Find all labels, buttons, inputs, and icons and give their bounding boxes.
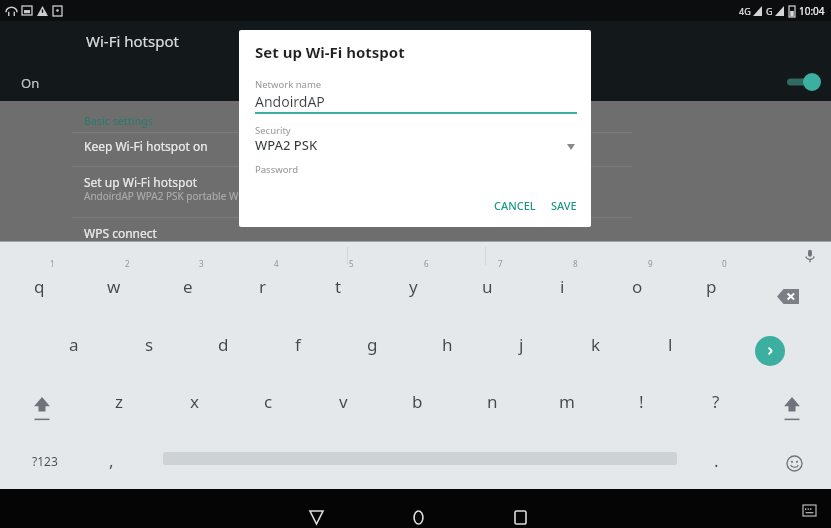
staticText: 4 [274, 258, 279, 269]
staticText: r [259, 275, 267, 298]
button[interactable]: d [199, 327, 247, 361]
button[interactable]: n [468, 384, 516, 418]
staticText: q [34, 275, 45, 298]
staticText: h [442, 333, 453, 356]
staticText: WPA2 PSK [255, 136, 318, 154]
staticText: s [145, 333, 154, 356]
staticText: 1 [50, 258, 55, 269]
staticText: l [668, 333, 673, 356]
staticText: ? [712, 390, 720, 413]
button[interactable]: f [274, 327, 322, 361]
button[interactable]: Home [398, 498, 438, 528]
button[interactable]: l [646, 327, 694, 361]
button[interactable]: Emoji [778, 447, 810, 479]
staticText: e [183, 275, 193, 298]
button[interactable]: k [572, 327, 620, 361]
button[interactable]: Shift [770, 391, 814, 429]
button[interactable]: CANCEL [486, 193, 544, 218]
staticText: On [21, 74, 40, 92]
staticText: Wi-Fi hotspot [86, 31, 179, 51]
button[interactable]: m [543, 384, 591, 418]
staticText: w [107, 275, 121, 298]
staticText: f [295, 333, 301, 356]
staticText: G [766, 5, 773, 17]
staticText: 6 [424, 258, 429, 269]
staticText: g [367, 333, 378, 356]
staticText: . [714, 449, 719, 472]
button[interactable]: h [423, 327, 471, 361]
button[interactable]: Next [755, 336, 785, 366]
staticText: d [218, 333, 229, 356]
button[interactable]: Backspace [766, 279, 810, 313]
button[interactable]: 2 [88, 258, 140, 304]
staticText: i [560, 275, 565, 298]
button[interactable]: Recents [500, 498, 540, 528]
button[interactable]: v [319, 384, 367, 418]
staticText: x [190, 390, 199, 413]
button[interactable]: Hide keyboard [800, 501, 818, 519]
staticText: , [109, 449, 114, 472]
staticText: y [409, 275, 418, 298]
button[interactable]: x [170, 384, 218, 418]
button[interactable]: 6 [387, 258, 439, 304]
staticText: 2 [125, 258, 130, 269]
button[interactable]: Set up Wi-Fi hotspot [84, 174, 198, 190]
button[interactable]: 7 [461, 258, 513, 304]
staticText: j [519, 333, 524, 356]
staticText: 8 [573, 258, 578, 269]
button[interactable]: , [87, 443, 135, 477]
button[interactable]: . [692, 443, 740, 477]
button[interactable]: z [95, 384, 143, 418]
staticText: 7 [498, 258, 503, 269]
staticText: Set up Wi-Fi hotspot [255, 42, 405, 62]
staticText: c [264, 390, 273, 413]
button[interactable]: b [393, 384, 441, 418]
button[interactable]: a [50, 327, 98, 361]
staticText: Security [255, 124, 291, 137]
button[interactable]: 9 [611, 258, 663, 304]
button[interactable]: WPS connect [84, 225, 157, 241]
staticText: ! [639, 390, 644, 413]
button[interactable]: 1 [13, 258, 65, 304]
staticText: b [412, 390, 423, 413]
staticText: p [706, 275, 717, 298]
button[interactable]: j [497, 327, 545, 361]
button[interactable]: ?123 [18, 447, 72, 475]
button[interactable]: 3 [162, 258, 214, 304]
staticText: Basic settings [84, 114, 153, 128]
button[interactable]: AndoirdAP [255, 92, 325, 111]
staticText: n [487, 390, 498, 413]
staticText: 0 [722, 258, 727, 269]
button[interactable]: Keep Wi-Fi hotspot on [84, 138, 208, 154]
staticText: 10:04 [799, 4, 825, 18]
staticText: Network name [255, 78, 322, 91]
staticText: o [632, 275, 643, 298]
button[interactable]: g [348, 327, 396, 361]
button[interactable]: Back [296, 498, 336, 528]
staticText: ?123 [32, 453, 58, 469]
button[interactable]: Password [255, 163, 298, 176]
button[interactable]: ! [617, 384, 665, 418]
staticText: SAVE [551, 198, 577, 213]
staticText: u [482, 275, 493, 298]
button[interactable]: ? [692, 384, 740, 418]
button[interactable]: SAVE [543, 193, 585, 218]
button[interactable]: WPA2 PSK [255, 136, 577, 156]
staticText: k [591, 333, 601, 356]
button[interactable]: 0 [685, 258, 737, 304]
button[interactable]: 8 [536, 258, 588, 304]
button[interactable]: 5 [312, 258, 364, 304]
staticText: m [559, 390, 575, 413]
staticText: 4G [739, 5, 751, 17]
staticText: 9 [648, 258, 653, 269]
staticText: AndoirdAP WPA2 PSK portable Wi-Fi [84, 189, 252, 203]
button[interactable]: 4 [237, 258, 289, 304]
button[interactable]: s [125, 327, 173, 361]
button[interactable]: c [244, 384, 292, 418]
button[interactable]: Voice input [798, 244, 822, 268]
button[interactable]: Shift [20, 391, 64, 429]
staticText: z [115, 390, 123, 413]
staticText: a [69, 333, 79, 356]
button[interactable]: Wi-Fi hotspot on [785, 73, 821, 91]
